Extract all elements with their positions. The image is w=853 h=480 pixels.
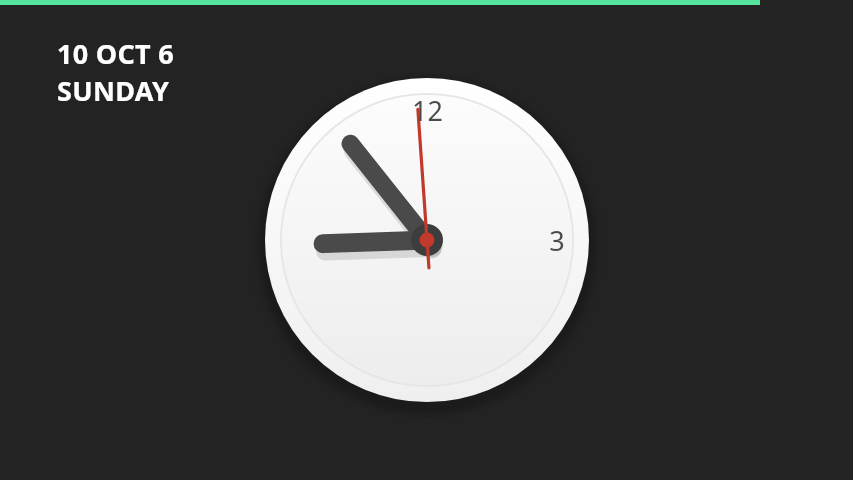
staticText: SUNDAY (57, 72, 170, 109)
button[interactable]: 10 OCT 6 (57, 35, 175, 109)
staticText: 12 (412, 92, 443, 129)
staticText: 10 OCT 6 (57, 35, 175, 72)
staticText: 3 (549, 222, 565, 259)
button[interactable]: Analog clock face (0, 0, 853, 480)
